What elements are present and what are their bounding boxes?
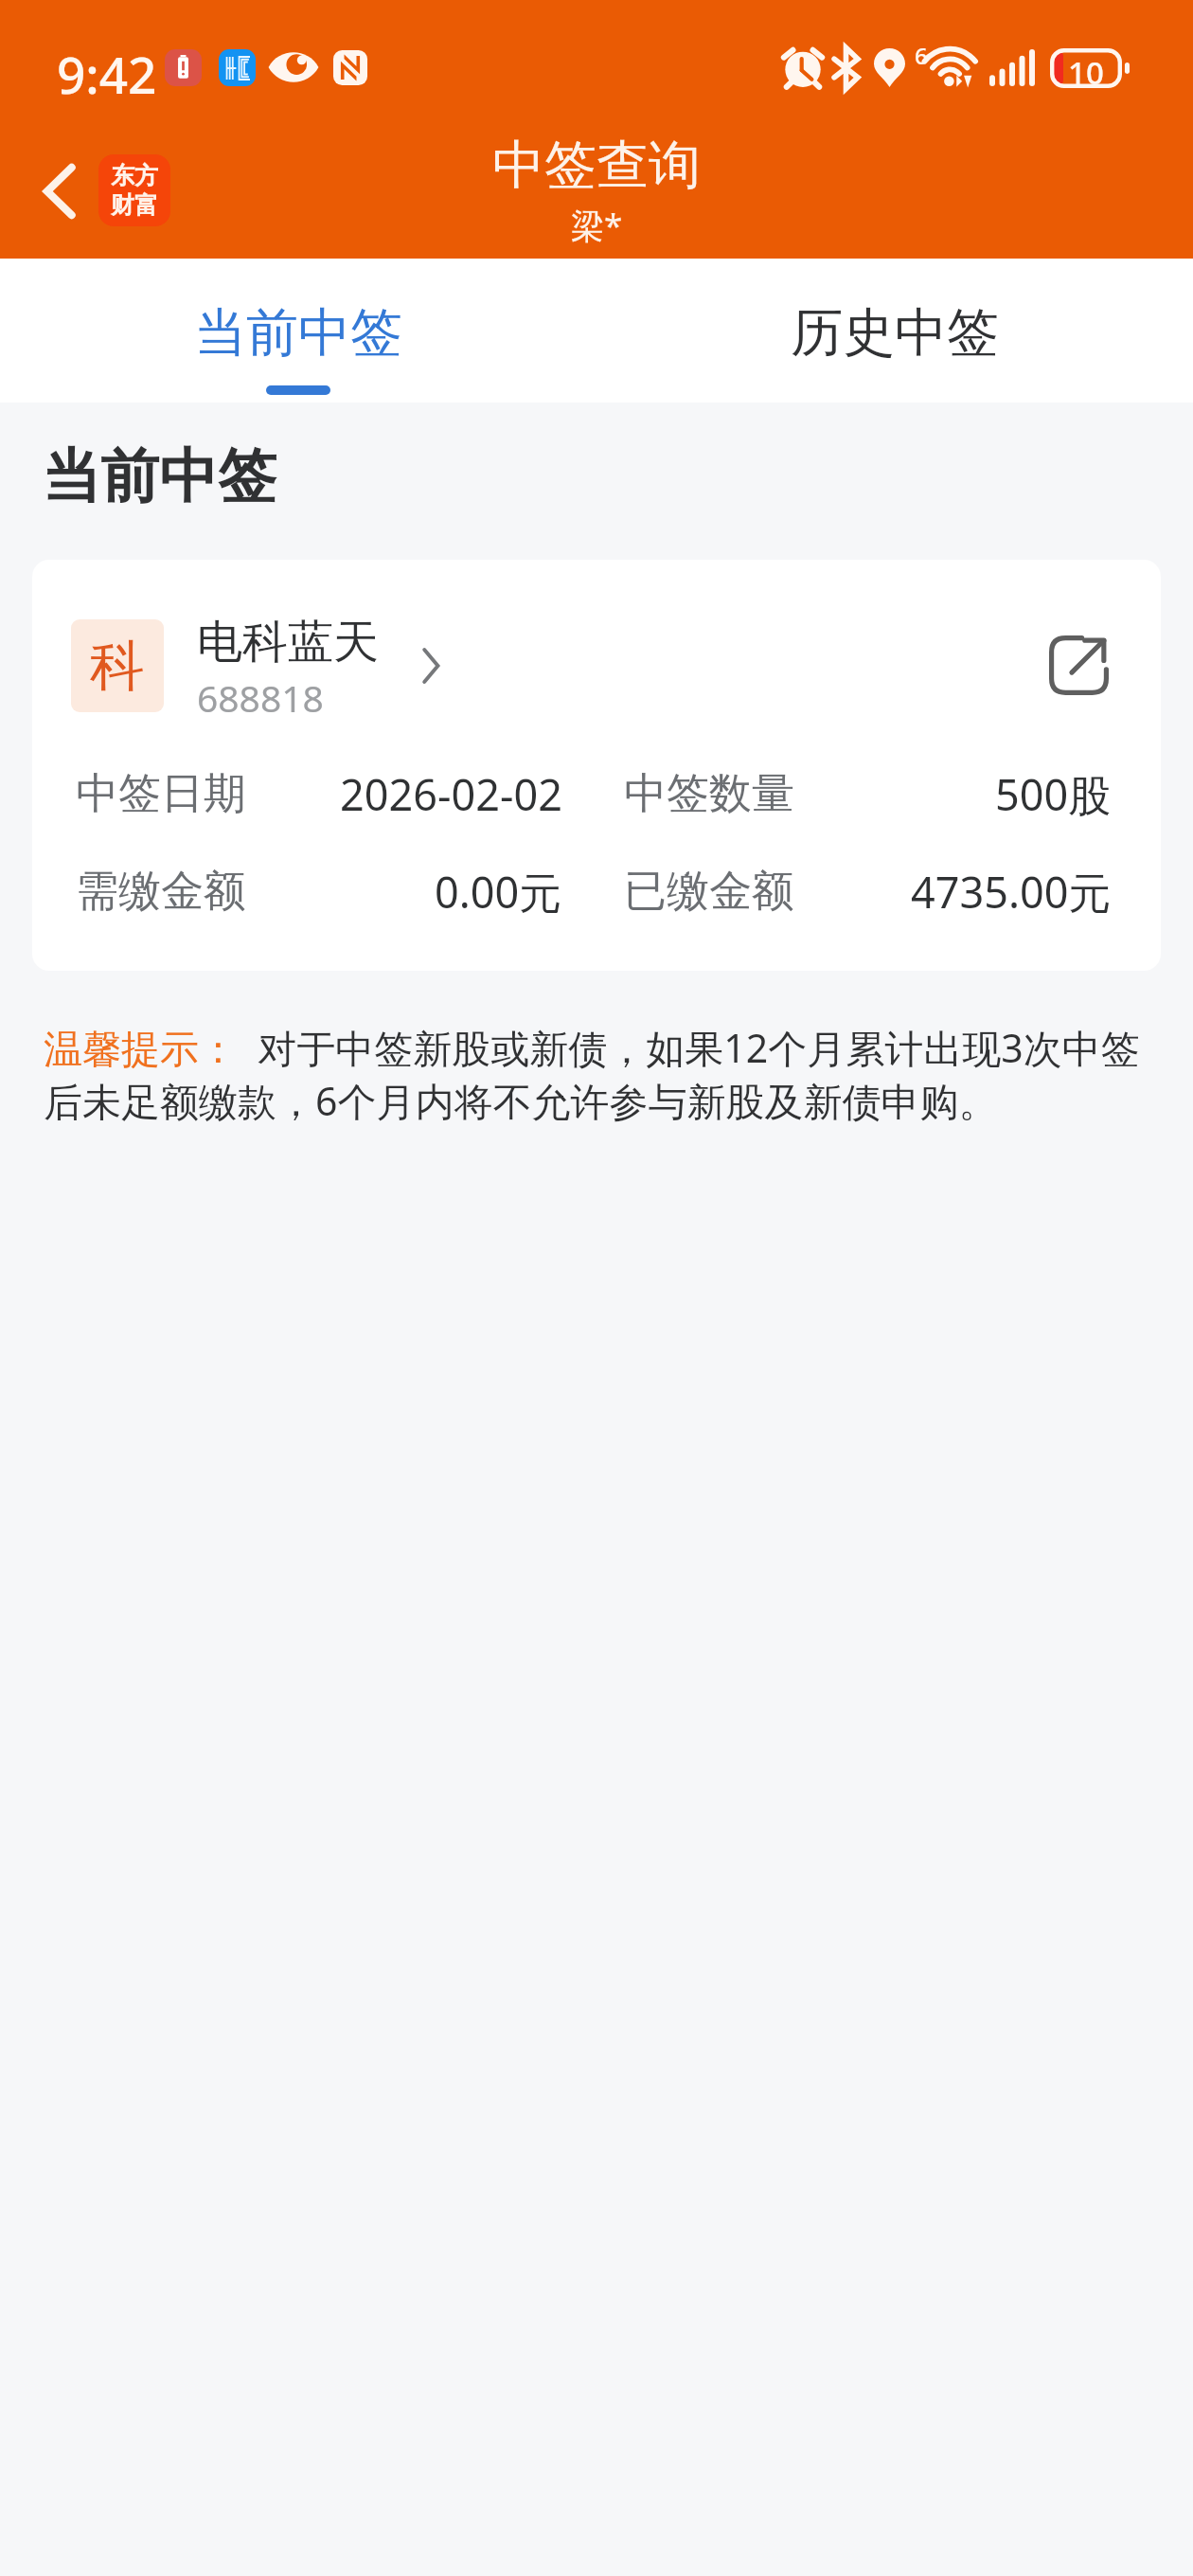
- staticText: 当前中签: [194, 300, 402, 366]
- button[interactable]: Stock detail: [415, 644, 447, 688]
- staticText: 需缴金额: [76, 865, 246, 919]
- staticText: 9:42: [57, 40, 157, 108]
- staticText: 中签日期: [76, 767, 246, 821]
- staticText: 历史中签: [791, 300, 999, 366]
- staticText: 2026-02-02: [340, 765, 562, 823]
- button[interactable]: Back: [9, 142, 108, 241]
- staticText: 4735.00元: [911, 863, 1112, 921]
- staticText: 688818: [197, 672, 324, 723]
- button[interactable]: 科: [32, 560, 1161, 971]
- button[interactable]: East Money home: [98, 154, 170, 226]
- staticText: 电科蓝天: [197, 614, 379, 671]
- staticText: 中签数量: [624, 767, 794, 821]
- staticText: 500股: [995, 765, 1112, 823]
- staticText: 已缴金额: [624, 865, 794, 919]
- staticText: 科: [90, 632, 145, 701]
- staticText: 梁*: [571, 203, 623, 248]
- staticText: 温馨提示： 对于中签新股或新债，如果12个月累计出现3次中签后未足额缴款，6个月…: [44, 1021, 1165, 1128]
- staticText: 10: [1068, 51, 1104, 91]
- staticText: 6: [915, 40, 928, 71]
- staticText: 当前中签: [42, 439, 276, 513]
- button[interactable]: Open detail page: [1049, 635, 1109, 695]
- staticText: 东方: [111, 161, 158, 190]
- staticText: 0.00元: [435, 863, 562, 921]
- staticText: 财富: [111, 190, 158, 220]
- button[interactable]: 当前中签: [0, 259, 596, 402]
- button[interactable]: 历史中签: [596, 259, 1193, 402]
- staticText: 中签查询: [492, 133, 701, 198]
